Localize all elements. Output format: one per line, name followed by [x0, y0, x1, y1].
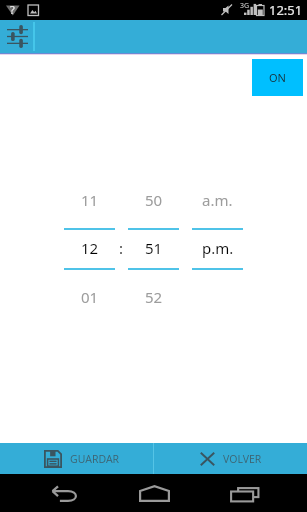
button[interactable]: 01: [64, 282, 115, 311]
staticText: 51: [145, 238, 163, 258]
staticText: 50: [145, 190, 163, 210]
button[interactable]: p.m.: [192, 233, 243, 262]
button[interactable]: Back: [25, 478, 103, 512]
button[interactable]: Settings: [1, 21, 33, 52]
staticText: ?: [10, 2, 15, 17]
button[interactable]: Home: [120, 478, 188, 512]
staticText: 52: [145, 287, 163, 307]
button[interactable]: GUARDAR: [0, 443, 153, 474]
staticText: ON: [269, 70, 286, 85]
staticText: 3G: [240, 1, 250, 11]
staticText: p.m.: [202, 238, 234, 258]
staticText: VOLVER: [223, 452, 262, 466]
button[interactable]: 52: [128, 282, 179, 311]
button[interactable]: ON: [252, 59, 303, 96]
staticText: 11: [81, 190, 99, 210]
staticText: 01: [81, 287, 99, 307]
button[interactable]: 12: [64, 233, 115, 262]
staticText: 12:51: [269, 1, 303, 19]
button[interactable]: 51: [128, 233, 179, 262]
staticText: :: [119, 238, 124, 258]
button[interactable]: a.m.: [192, 185, 243, 214]
button[interactable]: 50: [128, 185, 179, 214]
button[interactable]: VOLVER: [154, 443, 307, 474]
button[interactable]: 11: [64, 185, 115, 214]
button[interactable]: Recents: [212, 478, 280, 512]
staticText: a.m.: [202, 190, 233, 210]
staticText: 12: [81, 238, 99, 258]
staticText: GUARDAR: [70, 452, 120, 466]
